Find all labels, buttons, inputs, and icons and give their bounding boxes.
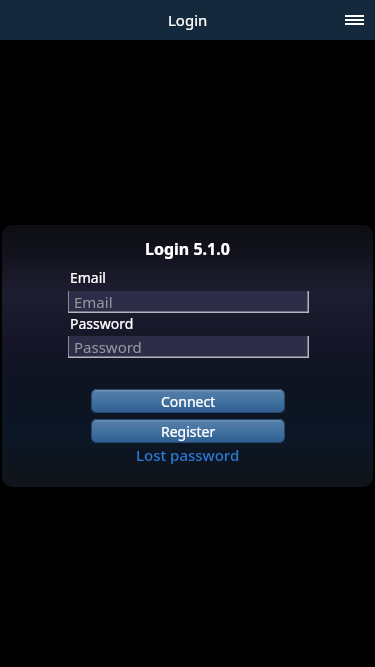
staticText: Password	[70, 314, 134, 333]
staticText: Lost password	[136, 445, 240, 465]
button[interactable]: Lost password	[136, 445, 240, 465]
staticText: Login 5.1.0	[145, 238, 230, 260]
button[interactable]: Register	[91, 419, 285, 443]
button[interactable]: Email	[68, 290, 309, 313]
staticText: Register	[161, 422, 216, 441]
button[interactable]: Connect	[91, 389, 285, 413]
staticText: Login	[168, 10, 208, 30]
button[interactable]	[345, 15, 364, 25]
staticText: Connect	[161, 392, 216, 411]
staticText: Password	[74, 337, 142, 357]
staticText: Email	[70, 268, 106, 287]
staticText: Email	[74, 292, 113, 312]
button[interactable]: Password	[68, 335, 309, 358]
